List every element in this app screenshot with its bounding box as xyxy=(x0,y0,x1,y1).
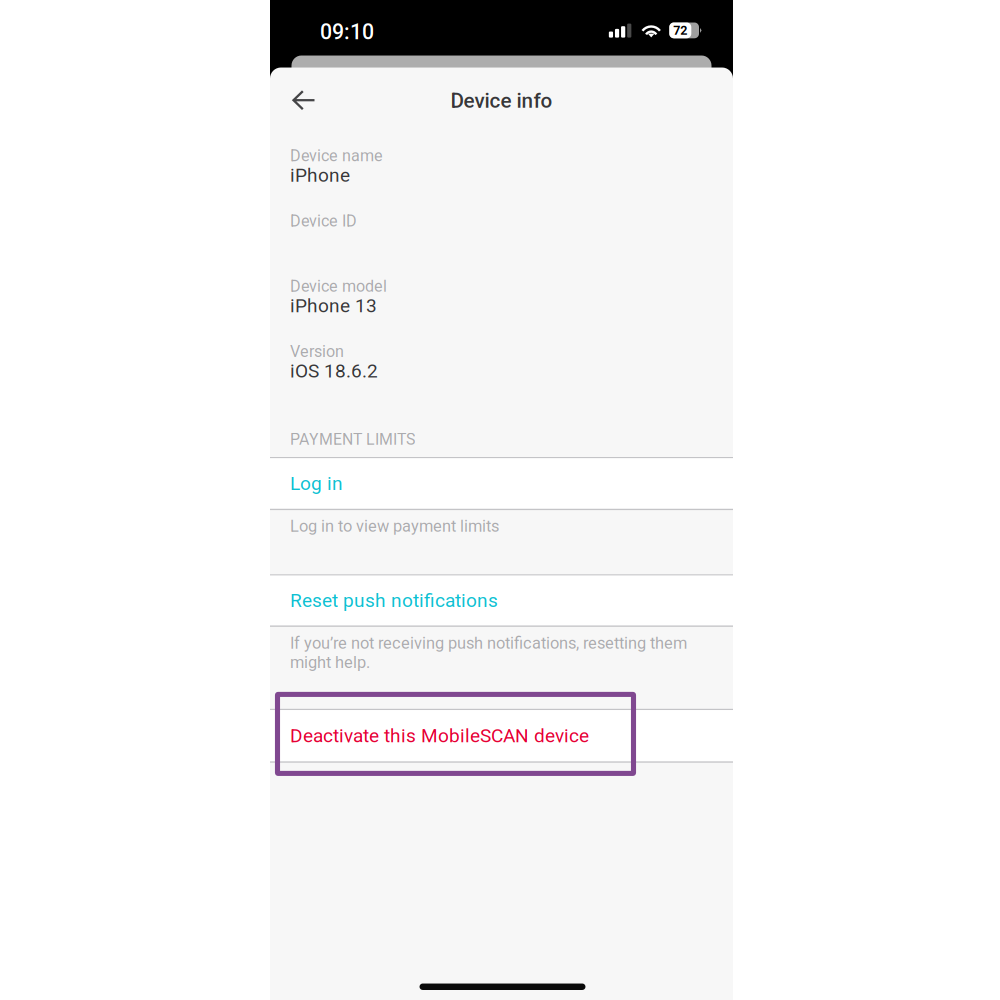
staticText: Deactivate this MobileSCAN device xyxy=(290,725,589,747)
staticText: Device info xyxy=(450,88,552,113)
staticText: 72 xyxy=(673,23,687,38)
staticText: Reset push notifications xyxy=(290,589,498,612)
staticText: Device ID xyxy=(290,211,357,230)
staticText: 09:10 xyxy=(320,19,374,44)
button[interactable]: Log in xyxy=(270,458,733,509)
staticText: iPhone 13 xyxy=(290,294,377,317)
button[interactable]: Back xyxy=(292,85,336,115)
staticText: Device name xyxy=(290,146,383,165)
staticText: If you’re not receiving push notificatio… xyxy=(290,633,687,672)
staticText: Version xyxy=(290,342,344,361)
staticText: Log in xyxy=(290,472,343,495)
staticText: iPhone xyxy=(290,164,350,186)
button[interactable]: Reset push notifications xyxy=(270,576,733,625)
staticText: Device model xyxy=(290,277,387,296)
staticText: Log in to view payment limits xyxy=(290,516,499,536)
staticText: iOS 18.6.2 xyxy=(290,360,378,382)
button[interactable]: Deactivate this MobileSCAN device xyxy=(270,710,733,761)
staticText: PAYMENT LIMITS xyxy=(290,430,415,449)
